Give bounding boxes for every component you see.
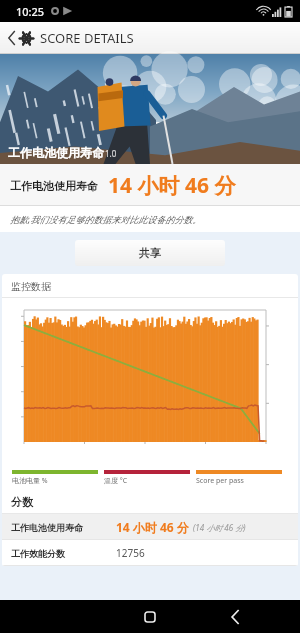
staticText: (14 小时 46 分): [193, 522, 246, 533]
button[interactable]: 共享: [75, 240, 225, 266]
staticText: 监控数据: [11, 280, 51, 293]
staticText: 抱歉,我们没有足够的数据来对比此设备的分数。: [10, 213, 202, 225]
button[interactable]: Back: [220, 602, 250, 632]
staticText: 10:25: [16, 4, 45, 19]
button[interactable]: Back: [4, 25, 138, 51]
staticText: 共享: [139, 246, 161, 260]
staticText: 温度 °C: [104, 476, 128, 486]
staticText: 12756: [116, 546, 145, 560]
button[interactable]: Home: [135, 602, 165, 632]
staticText: 工作电池使用寿命: [11, 522, 83, 533]
button[interactable]: 工作效能分数: [2, 540, 298, 566]
staticText: 14 小时 46 分: [108, 171, 236, 200]
staticText: 工作效能分数: [11, 548, 65, 559]
staticText: 电池电量 %: [12, 476, 48, 486]
staticText: 14 小时 46 分: [116, 519, 189, 535]
staticText: 工作电池使用寿命: [8, 145, 104, 160]
staticText: 1.0: [105, 148, 117, 159]
staticText: 工作电池使用寿命: [10, 179, 98, 193]
staticText: SCORE DETAILS: [40, 29, 134, 47]
button[interactable]: 工作电池使用寿命: [2, 514, 298, 540]
staticText: Score per pass: [196, 476, 244, 486]
staticText: 分数: [11, 495, 33, 509]
